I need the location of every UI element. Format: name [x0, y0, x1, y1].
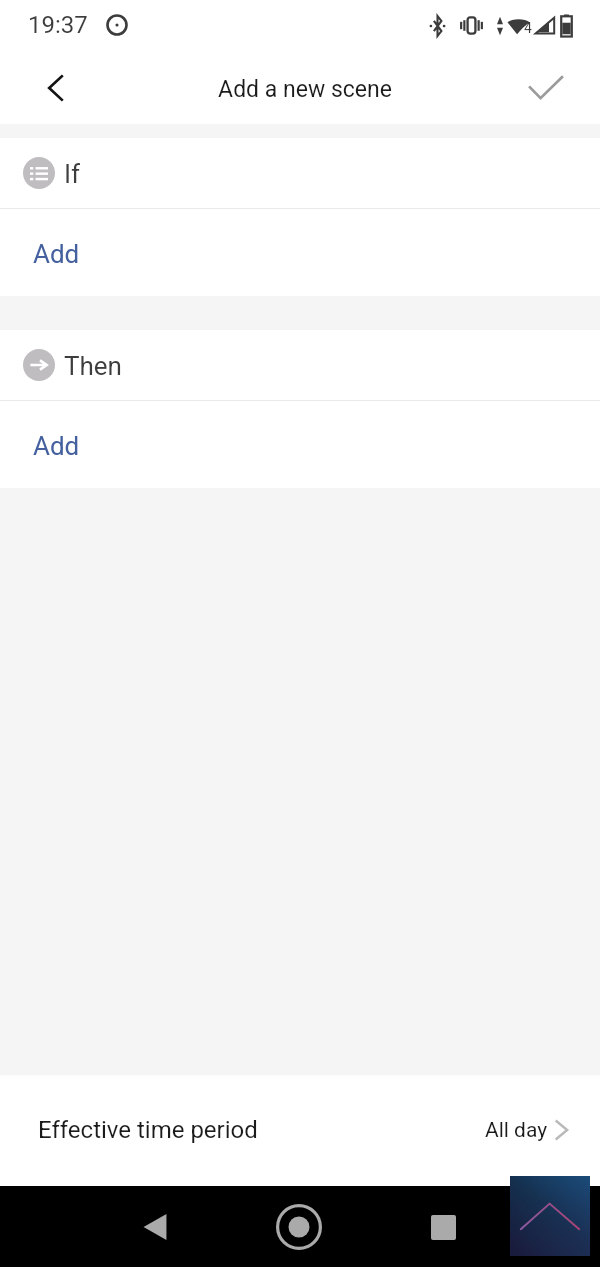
button[interactable]: Effective time period [0, 1078, 600, 1186]
button[interactable]: Home [269, 1197, 329, 1257]
staticText: Add a new scene [218, 76, 392, 103]
button[interactable]: Expand panel [510, 1176, 590, 1256]
button[interactable]: Back [0, 50, 74, 124]
staticText: 4 [524, 20, 532, 36]
button[interactable]: If [0, 138, 600, 208]
staticText: 19:37 [28, 11, 88, 39]
staticText: Then [64, 351, 122, 381]
button[interactable]: Confirm [526, 50, 600, 124]
staticText: If [64, 159, 81, 189]
button[interactable]: Back [127, 1199, 183, 1255]
button[interactable]: Recents [415, 1199, 471, 1255]
staticText: All day [485, 1118, 548, 1143]
staticText: Add [33, 431, 80, 461]
staticText: Add [33, 239, 80, 269]
button[interactable]: Add [0, 401, 600, 488]
staticText: Effective time period [38, 1116, 258, 1144]
button[interactable]: Then [0, 330, 600, 400]
button[interactable]: Add [0, 209, 600, 296]
